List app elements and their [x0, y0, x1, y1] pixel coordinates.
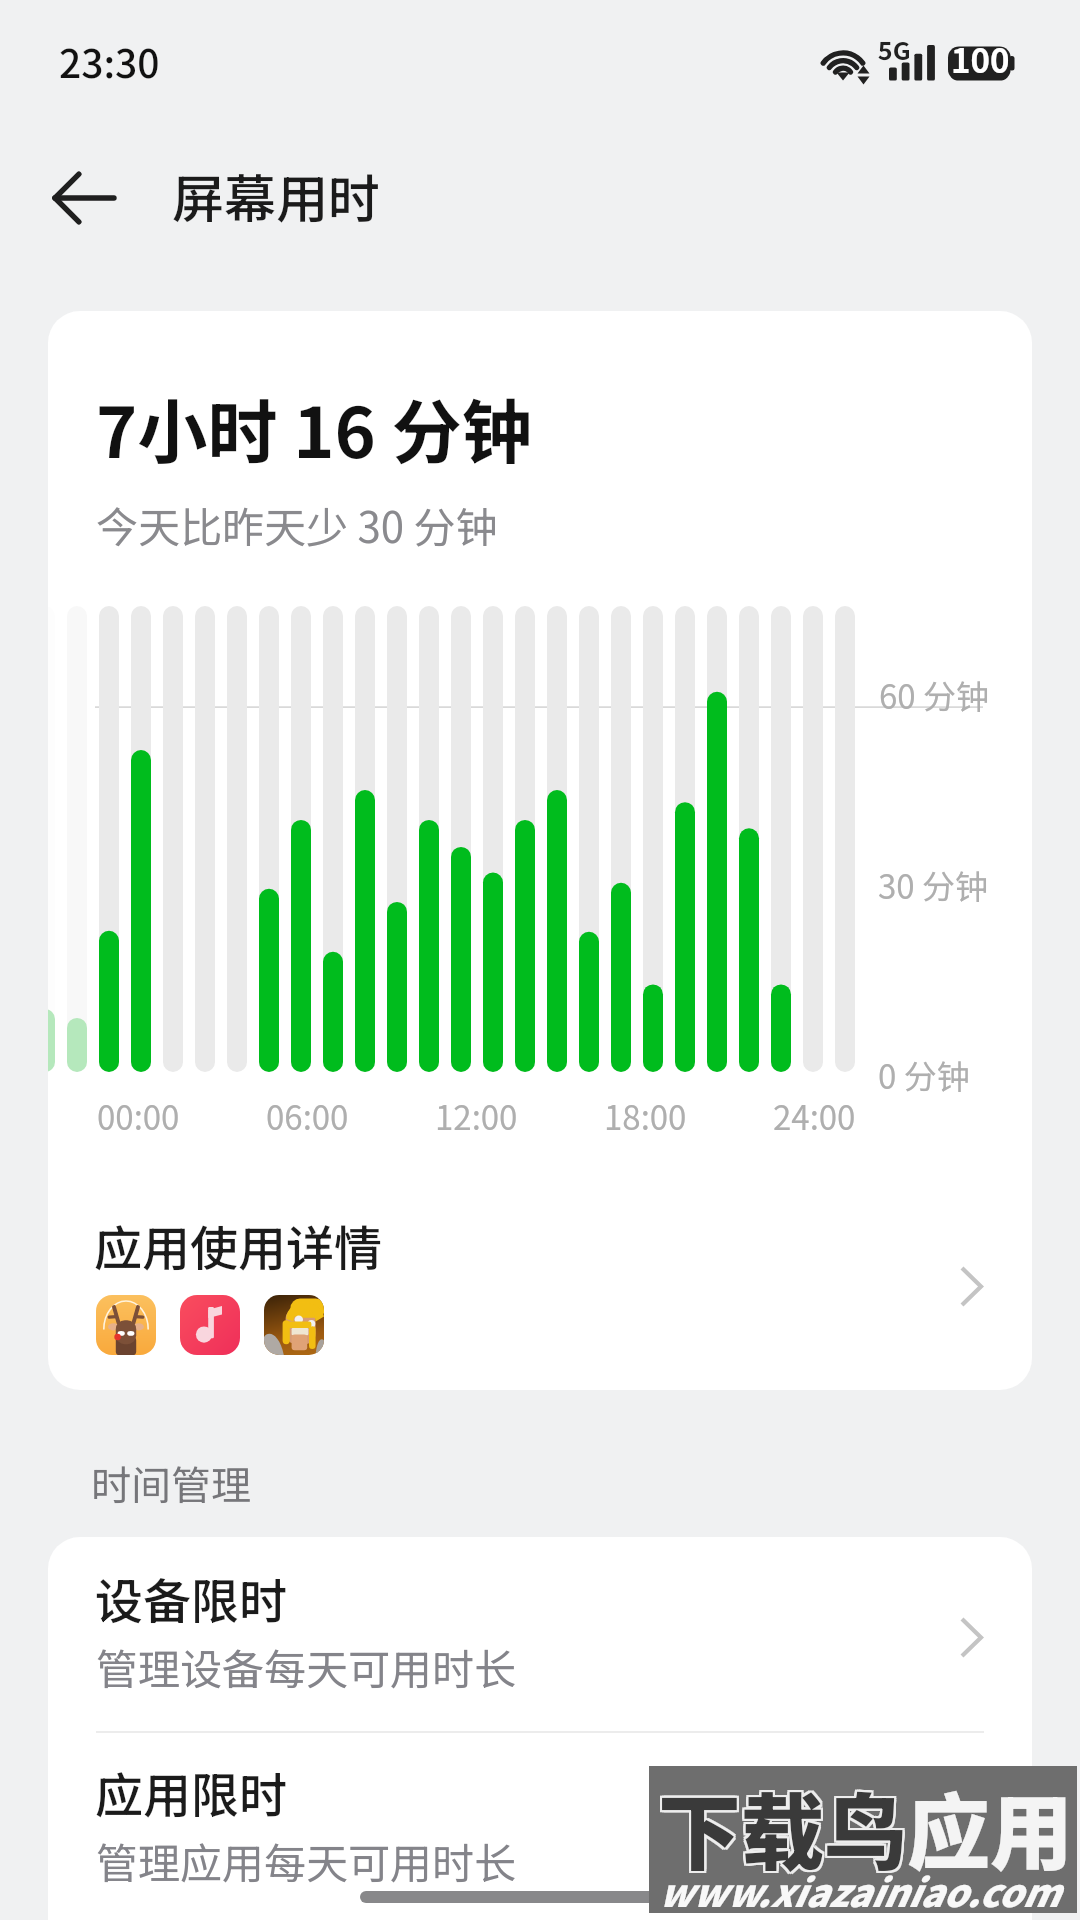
staticText: 7小时 16 分钟	[96, 377, 532, 478]
staticText: 下载鸟	[660, 1769, 909, 1889]
staticText: 下载鸟	[658, 1767, 907, 1887]
staticText: 时间管理	[91, 1454, 251, 1512]
staticText: 24:00	[773, 1092, 856, 1140]
staticText: 23:30	[59, 33, 160, 89]
staticText: 下载鸟	[656, 1765, 905, 1885]
button[interactable]: 应用使用详情	[48, 1191, 1032, 1371]
staticText: 屏幕用时	[172, 158, 381, 233]
staticText: 30 分钟	[878, 861, 989, 909]
staticText: 下载鸟	[658, 1765, 907, 1885]
staticText: 下载鸟	[660, 1765, 909, 1885]
staticText: www.xiazainiao.com	[658, 1863, 1060, 1918]
staticText: 下载鸟	[658, 1769, 907, 1889]
staticText: 0 分钟	[878, 1051, 970, 1099]
staticText: 06:00	[266, 1092, 349, 1140]
staticText: 今天比昨天少 30 分钟	[96, 494, 498, 555]
staticText: 12:00	[435, 1092, 518, 1140]
staticText: 应用使用详情	[94, 1210, 383, 1280]
staticText: 下载鸟	[656, 1769, 905, 1889]
staticText: 5G	[878, 31, 911, 67]
staticText: 应用限时	[95, 1757, 288, 1827]
staticText: 18:00	[604, 1092, 687, 1140]
staticText: 下载鸟	[660, 1767, 909, 1887]
button[interactable]: Back	[30, 146, 138, 250]
staticText: 管理应用每天可用时长	[96, 1830, 517, 1891]
staticText: 60 分钟	[879, 671, 990, 719]
button[interactable]: 应用限时	[48, 1731, 1032, 1920]
staticText: 下载鸟	[656, 1767, 905, 1887]
staticText: 下载鸟	[658, 1767, 907, 1887]
staticText: 应用	[658, 1767, 1073, 1887]
staticText: 100	[951, 35, 1010, 83]
staticText: 00:00	[97, 1092, 180, 1140]
staticText: 设备限时	[95, 1563, 288, 1633]
button[interactable]: 设备限时	[48, 1537, 1032, 1731]
staticText: 管理设备每天可用时长	[96, 1636, 517, 1697]
